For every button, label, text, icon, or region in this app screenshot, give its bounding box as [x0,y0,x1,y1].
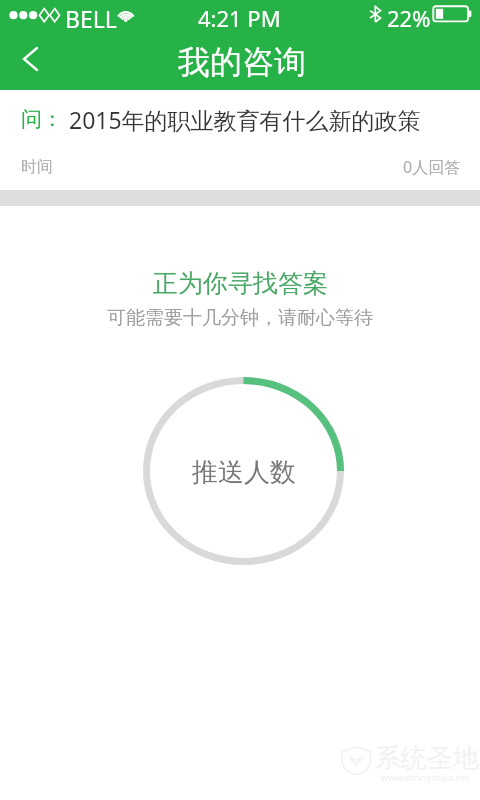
staticText: 2015年的职业教育有什么新的政策 [69,104,421,135]
staticText: 系统圣地 [375,742,479,775]
staticText: www.xitongzhijia.net [381,771,470,783]
staticText: 4:21 PM [198,3,281,33]
staticText: 推送人数 [192,456,296,489]
staticText: 时间 [21,157,53,177]
button[interactable]: 问： [0,90,480,190]
staticText: 0人回答 [403,156,461,178]
staticText: BELL [65,3,117,34]
staticText: 我的咨询 [178,42,306,82]
staticText: 22% [387,3,431,33]
staticText: 可能需要十几分钟，请耐心等待 [107,306,373,330]
staticText: 问： [21,106,63,132]
button[interactable]: Back [4,33,56,85]
staticText: 正为你寻找答案 [153,268,328,299]
